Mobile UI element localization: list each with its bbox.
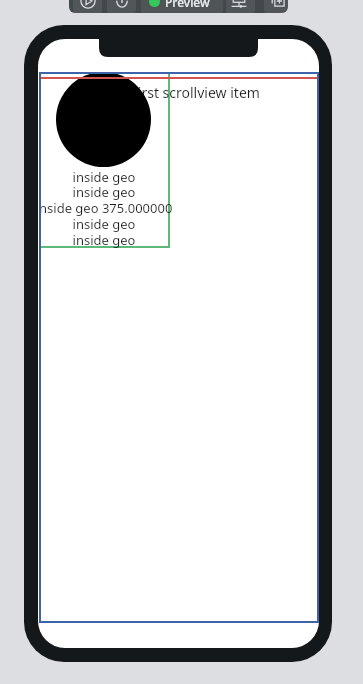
button[interactable]: Device settings — [224, 0, 253, 13]
button[interactable]: Run preview — [73, 0, 102, 13]
button[interactable]: Inspect — [107, 0, 136, 13]
button[interactable]: Add preview — [263, 0, 288, 13]
staticText: inside geo inside geo inside geo 375.000… — [38, 168, 214, 249]
staticText: Preview — [165, 0, 210, 10]
staticText: first scrollview item — [133, 83, 260, 102]
